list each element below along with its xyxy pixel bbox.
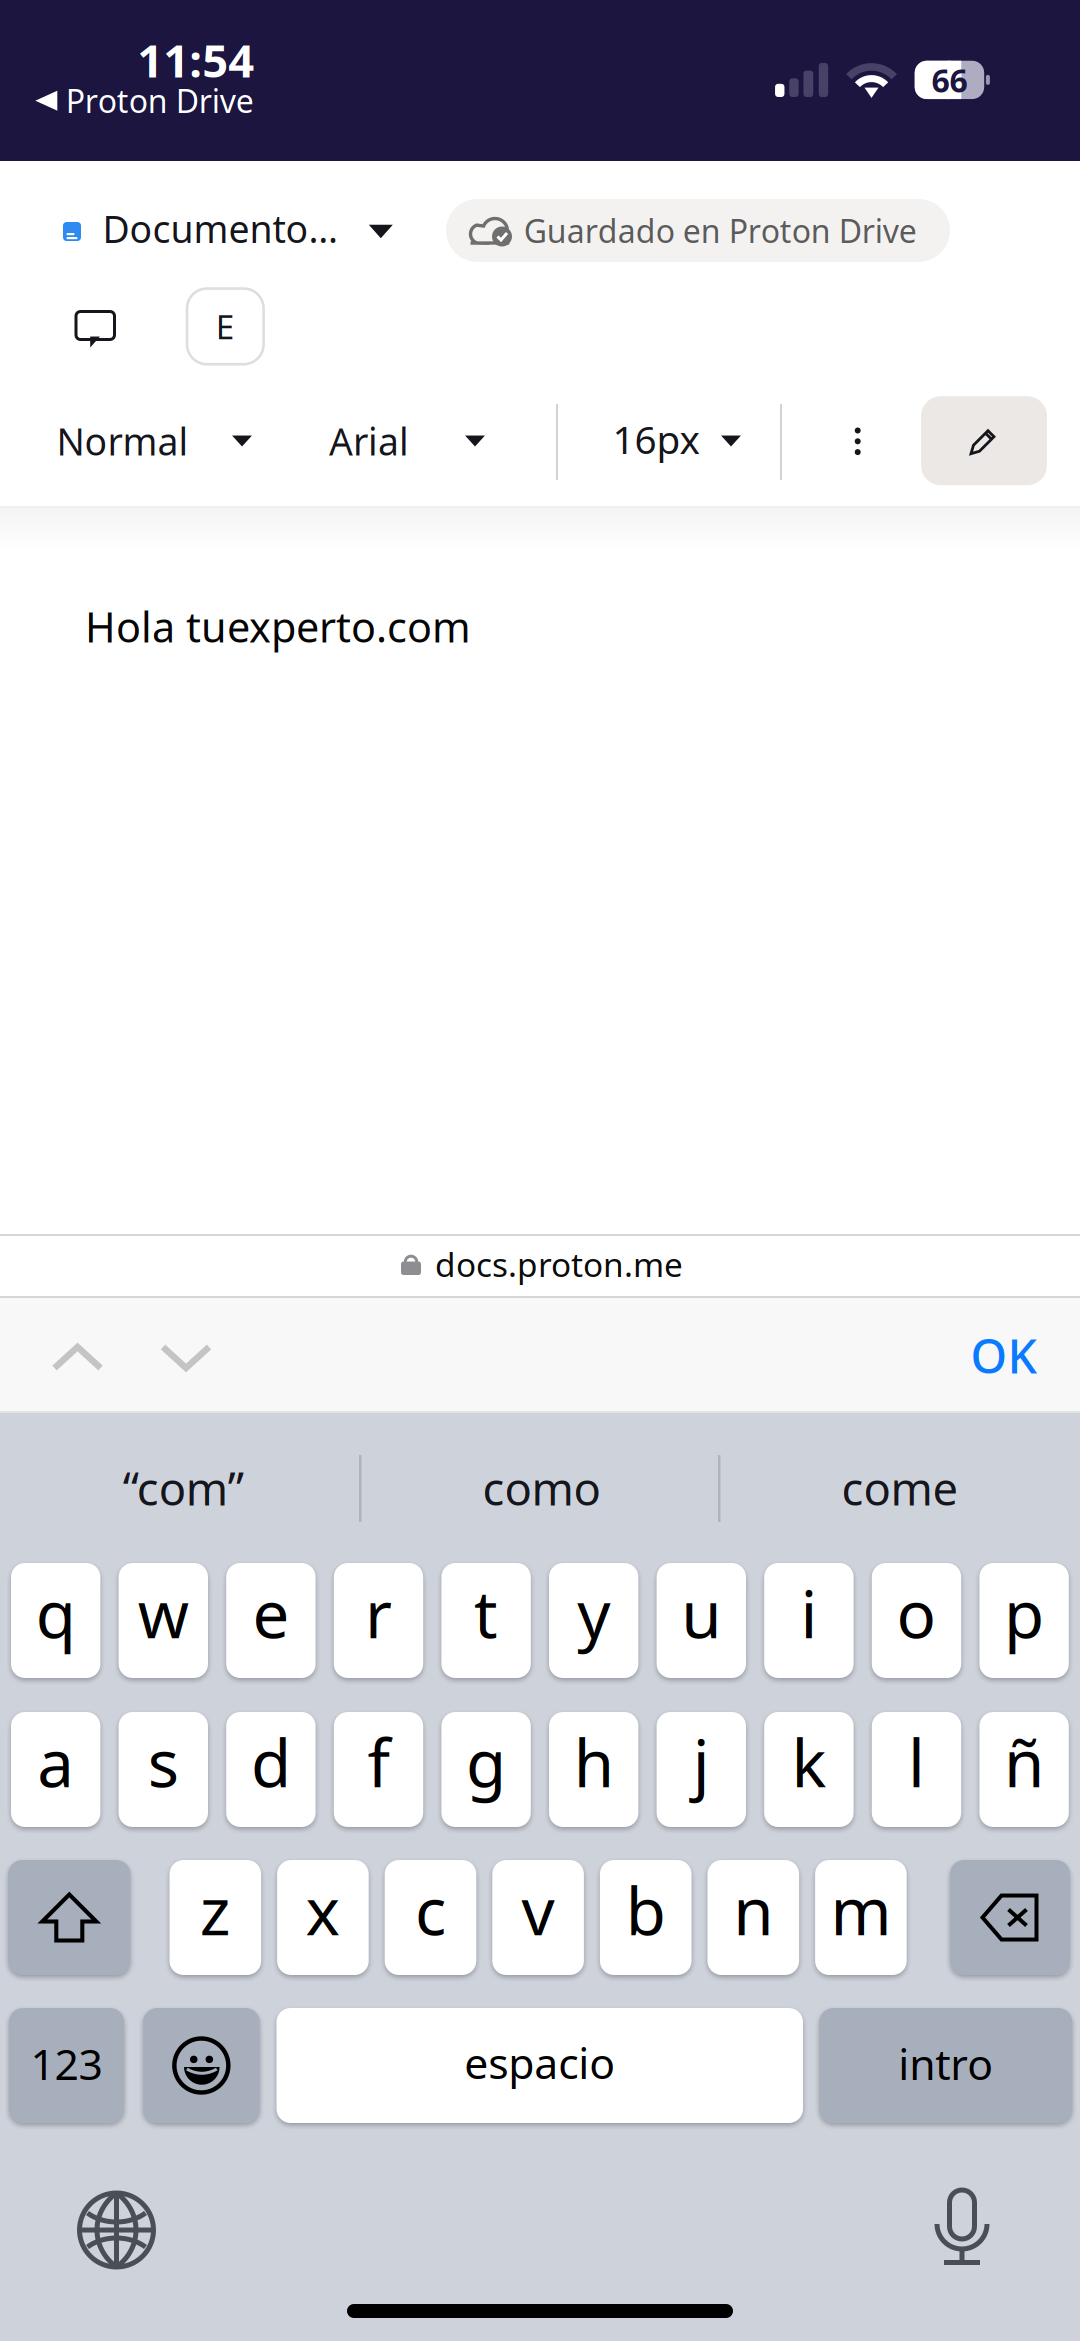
button[interactable]: a bbox=[11, 1712, 100, 1827]
staticText: Normal bbox=[56, 416, 188, 466]
staticText: ñ bbox=[1004, 1719, 1044, 1805]
button[interactable]: ñ bbox=[979, 1712, 1069, 1827]
staticText: come bbox=[841, 1458, 958, 1518]
button[interactable]: espacio bbox=[276, 2008, 803, 2123]
button[interactable]: g bbox=[441, 1712, 531, 1827]
button[interactable]: f bbox=[334, 1712, 423, 1827]
staticText: intro bbox=[898, 2035, 993, 2092]
staticText: r bbox=[365, 1570, 392, 1656]
button[interactable]: intro bbox=[819, 2008, 1072, 2123]
staticText: u bbox=[681, 1570, 721, 1656]
staticText: Arial bbox=[329, 416, 409, 466]
button[interactable]: OK bbox=[943, 1303, 1063, 1407]
button[interactable]: Previous field bbox=[25, 1305, 129, 1409]
button[interactable]: como bbox=[371, 1430, 711, 1550]
button[interactable]: E bbox=[187, 288, 264, 364]
staticText: f bbox=[367, 1719, 389, 1805]
button[interactable]: y bbox=[549, 1563, 638, 1678]
staticText: z bbox=[200, 1867, 231, 1953]
button[interactable]: d bbox=[226, 1712, 316, 1827]
staticText: i bbox=[800, 1570, 817, 1656]
button[interactable]: c bbox=[385, 1860, 476, 1975]
staticText: v bbox=[522, 1867, 555, 1953]
staticText: n bbox=[733, 1867, 773, 1953]
button[interactable]: Shift bbox=[8, 1860, 130, 1975]
staticText: s bbox=[148, 1719, 179, 1805]
button[interactable]: Arial bbox=[329, 403, 485, 479]
button[interactable]: h bbox=[549, 1712, 638, 1827]
staticText: 16px bbox=[612, 413, 699, 465]
button[interactable]: e bbox=[226, 1563, 316, 1678]
button[interactable]: v bbox=[492, 1860, 584, 1975]
staticText: k bbox=[791, 1719, 826, 1805]
staticText: como bbox=[482, 1458, 600, 1518]
staticText: x bbox=[305, 1867, 340, 1953]
staticText: Guardado en Proton Drive bbox=[524, 209, 917, 252]
button[interactable]: “com” bbox=[13, 1430, 353, 1550]
staticText: espacio bbox=[464, 2034, 615, 2091]
button[interactable]: w bbox=[119, 1563, 208, 1678]
button[interactable]: u bbox=[657, 1563, 746, 1678]
staticText: y bbox=[577, 1570, 610, 1656]
staticText: m bbox=[830, 1867, 891, 1953]
button[interactable]: 16px bbox=[612, 403, 737, 479]
button[interactable]: Dictation bbox=[907, 2172, 1017, 2282]
staticText: l bbox=[908, 1719, 925, 1805]
button[interactable]: r bbox=[334, 1563, 423, 1678]
staticText: d bbox=[251, 1719, 291, 1805]
button[interactable]: More options bbox=[826, 403, 890, 479]
staticText: w bbox=[138, 1570, 189, 1656]
staticText: t bbox=[474, 1570, 498, 1656]
button[interactable]: x bbox=[277, 1860, 369, 1975]
staticText: q bbox=[36, 1570, 76, 1656]
staticText: Proton Drive bbox=[66, 79, 254, 122]
button[interactable]: l bbox=[872, 1712, 961, 1827]
button[interactable]: k bbox=[764, 1712, 854, 1827]
button[interactable]: Edit document bbox=[921, 396, 1047, 485]
button[interactable]: Delete bbox=[950, 1860, 1070, 1975]
staticText: 66 bbox=[931, 59, 967, 101]
button[interactable]: 123 bbox=[9, 2008, 124, 2123]
button[interactable]: Guardado en Proton Drive bbox=[446, 199, 950, 262]
button[interactable]: t bbox=[441, 1563, 531, 1678]
button[interactable]: i bbox=[764, 1563, 854, 1678]
staticText: E bbox=[216, 304, 235, 349]
button[interactable]: docs.proton.me bbox=[341, 1235, 741, 1293]
staticText: e bbox=[252, 1570, 289, 1656]
staticText: 11:54 bbox=[137, 30, 254, 90]
staticText: Documento… bbox=[102, 204, 338, 253]
button[interactable]: come bbox=[730, 1430, 1070, 1550]
button[interactable]: Comments bbox=[58, 293, 132, 365]
staticText: “com” bbox=[123, 1458, 244, 1518]
button[interactable]: m bbox=[815, 1860, 907, 1975]
button[interactable]: b bbox=[600, 1860, 691, 1975]
staticText: a bbox=[37, 1719, 74, 1805]
staticText: b bbox=[626, 1867, 666, 1953]
staticText: h bbox=[574, 1719, 614, 1805]
staticText: 123 bbox=[30, 2035, 102, 2092]
staticText: OK bbox=[970, 1324, 1036, 1386]
staticText: c bbox=[415, 1867, 446, 1953]
button[interactable]: z bbox=[169, 1860, 261, 1975]
button[interactable]: p bbox=[979, 1563, 1069, 1678]
staticText: docs.proton.me bbox=[435, 1242, 683, 1286]
staticText: Hola tuexperto.com bbox=[85, 599, 471, 654]
staticText: j bbox=[693, 1719, 710, 1805]
button[interactable]: o bbox=[872, 1563, 961, 1678]
staticText: p bbox=[1004, 1570, 1044, 1656]
staticText: o bbox=[896, 1570, 936, 1656]
button[interactable]: Proton Drive bbox=[35, 75, 265, 127]
button[interactable]: Emoji bbox=[143, 2008, 260, 2123]
button[interactable]: Next keyboard bbox=[61, 2175, 171, 2285]
button[interactable]: s bbox=[119, 1712, 208, 1827]
button[interactable]: Documento… bbox=[63, 196, 403, 260]
button[interactable]: n bbox=[707, 1860, 799, 1975]
staticText: g bbox=[466, 1719, 506, 1805]
button[interactable]: Next field bbox=[134, 1305, 238, 1409]
button[interactable]: Normal bbox=[56, 403, 262, 479]
button[interactable]: q bbox=[11, 1563, 100, 1678]
button[interactable]: j bbox=[657, 1712, 746, 1827]
